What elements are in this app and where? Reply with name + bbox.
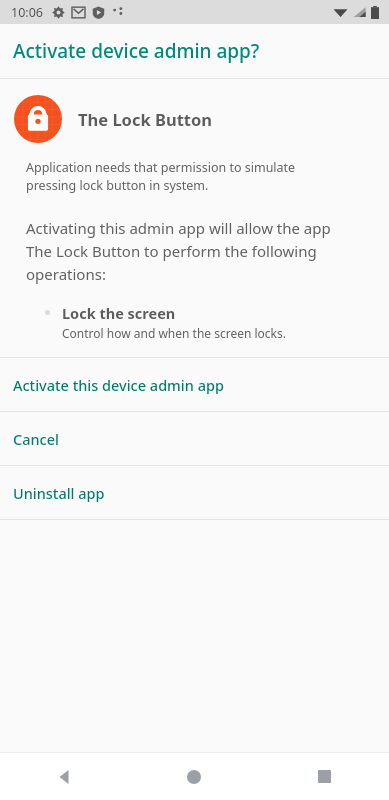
staticText: Activate device admin app? xyxy=(13,38,260,64)
button[interactable]: Back xyxy=(0,753,129,800)
staticText: The Lock Button xyxy=(78,108,213,130)
staticText: Application needs that permission to sim… xyxy=(26,159,329,194)
staticText: Control how and when the screen locks. xyxy=(62,325,286,341)
staticText: Activate this device admin app xyxy=(13,375,224,395)
staticText: Lock the screen xyxy=(62,303,176,323)
button[interactable]: Activate this device admin app xyxy=(0,358,389,411)
staticText: Activating this admin app will allow the… xyxy=(26,218,351,284)
button[interactable]: Uninstall app xyxy=(0,466,389,519)
button[interactable]: Cancel xyxy=(0,412,389,465)
button[interactable]: Recent apps xyxy=(259,753,389,800)
button[interactable]: Home xyxy=(129,753,259,800)
staticText: 10:06 xyxy=(11,4,43,21)
staticText: Cancel xyxy=(13,429,59,449)
staticText: Uninstall app xyxy=(13,483,105,503)
